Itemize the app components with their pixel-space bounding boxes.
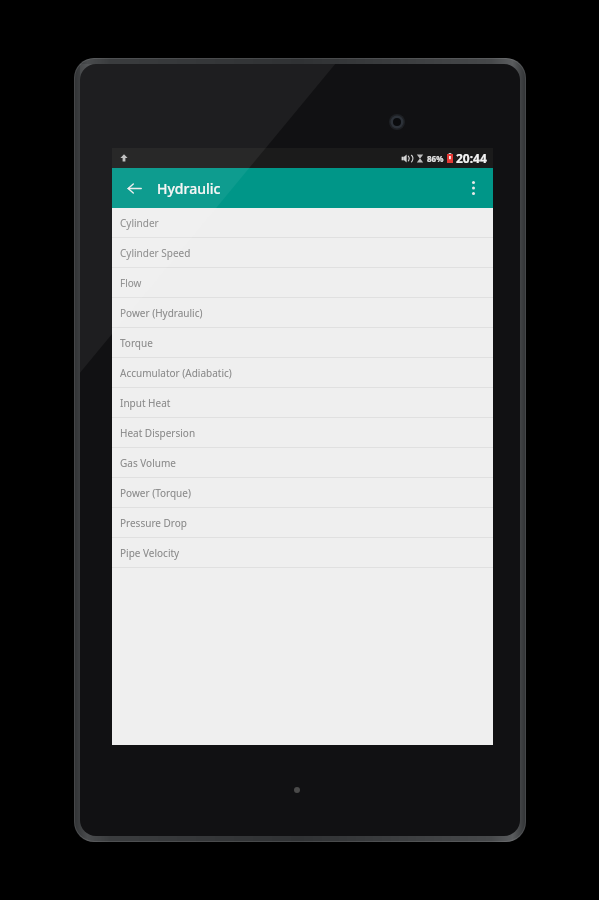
staticText: Heat Dispersion xyxy=(120,426,196,440)
staticText: 86% xyxy=(427,153,444,164)
staticText: 20:44 xyxy=(456,150,487,166)
button[interactable]: Torque xyxy=(112,328,493,358)
button[interactable]: More options xyxy=(459,174,487,202)
button[interactable]: Cylinder xyxy=(112,208,493,238)
staticText: Cylinder xyxy=(120,216,159,230)
button[interactable]: Flow xyxy=(112,268,493,298)
staticText: Power (Torque) xyxy=(120,486,191,500)
button[interactable]: Pipe Velocity xyxy=(112,538,493,568)
staticText: Gas Volume xyxy=(120,456,176,470)
button[interactable]: Power (Torque) xyxy=(112,478,493,508)
staticText: Pressure Drop xyxy=(120,516,187,530)
button[interactable]: Gas Volume xyxy=(112,448,493,478)
staticText: Hydraulic xyxy=(157,179,221,198)
button[interactable]: Heat Dispersion xyxy=(112,418,493,448)
staticText: Torque xyxy=(120,336,153,350)
staticText: Flow xyxy=(120,276,142,290)
staticText: Pipe Velocity xyxy=(120,546,180,560)
staticText: Input Heat xyxy=(120,396,171,410)
button[interactable]: Pressure Drop xyxy=(112,508,493,538)
staticText: Cylinder Speed xyxy=(120,246,191,260)
staticText: Accumulator (Adiabatic) xyxy=(120,366,232,380)
staticText: Power (Hydraulic) xyxy=(120,306,203,320)
button[interactable]: Cylinder Speed xyxy=(112,238,493,268)
button[interactable]: Accumulator (Adiabatic) xyxy=(112,358,493,388)
button[interactable]: Power (Hydraulic) xyxy=(112,298,493,328)
button[interactable]: Input Heat xyxy=(112,388,493,418)
button[interactable]: Back xyxy=(120,174,148,202)
